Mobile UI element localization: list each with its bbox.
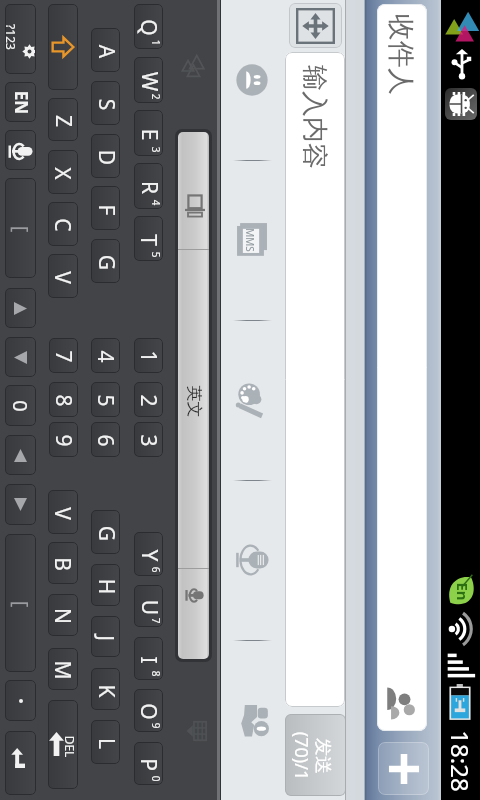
button[interactable]: K <box>91 668 120 710</box>
staticText: B <box>48 557 77 571</box>
staticText: L <box>91 737 120 749</box>
button[interactable]: Language EN <box>5 82 36 122</box>
staticText: 0 <box>150 775 162 781</box>
button[interactable]: Candidates <box>178 132 209 659</box>
staticText: 收件人 <box>384 14 418 95</box>
staticText: 7 <box>150 617 162 623</box>
staticText: K <box>91 684 120 697</box>
button[interactable]: N <box>48 594 78 636</box>
button[interactable]: G <box>91 239 120 283</box>
staticText: 3 <box>150 146 162 152</box>
button[interactable]: Expand editor <box>289 3 342 48</box>
button[interactable]: Space <box>5 178 36 278</box>
button[interactable]: Add recipient <box>378 742 429 795</box>
button[interactable]: G <box>91 510 120 554</box>
staticText: V <box>48 507 77 520</box>
button[interactable]: Recipient <box>377 4 427 731</box>
button[interactable]: L <box>91 720 120 764</box>
button[interactable]: Y <box>134 532 163 576</box>
button[interactable]: Left <box>5 337 36 377</box>
staticText: J <box>91 635 120 641</box>
button[interactable]: R <box>134 163 163 209</box>
button[interactable]: Symbols <box>5 4 36 74</box>
button[interactable]: Record audio <box>234 545 270 575</box>
staticText: 4 <box>91 350 120 363</box>
button[interactable]: M <box>48 648 78 690</box>
staticText: G <box>91 525 120 541</box>
staticText: W <box>134 71 163 91</box>
button[interactable]: Attach <box>234 702 270 738</box>
button[interactable]: V <box>48 490 78 534</box>
staticText: 1 <box>134 350 163 363</box>
button[interactable]: Right <box>5 288 36 328</box>
button[interactable]: C <box>48 202 78 246</box>
staticText: 9 <box>150 722 162 728</box>
staticText: 发送 (70)/1 <box>288 731 333 780</box>
button[interactable]: E <box>134 110 163 156</box>
button[interactable]: H <box>91 564 120 606</box>
button[interactable]: Period <box>5 680 36 721</box>
staticText: E <box>134 128 163 140</box>
staticText: T <box>134 234 163 246</box>
staticText: 5 <box>91 394 120 407</box>
staticText: N <box>48 608 77 624</box>
button[interactable]: Insert emoticon <box>235 63 269 97</box>
button[interactable]: U <box>134 585 163 627</box>
button[interactable]: B <box>48 542 78 584</box>
button[interactable]: Delete <box>48 700 78 789</box>
button[interactable]: Up <box>5 435 36 475</box>
button[interactable]: Message body <box>285 52 345 707</box>
staticText: [ <box>7 600 34 607</box>
button[interactable]: Space bar <box>5 534 36 672</box>
button[interactable]: Hide keyboard <box>182 714 212 748</box>
button[interactable]: 5 <box>91 382 120 417</box>
staticText: 英文 <box>183 385 203 417</box>
button[interactable]: Enter <box>5 731 36 795</box>
button[interactable]: 0 <box>5 385 36 426</box>
button[interactable]: J <box>91 616 120 657</box>
button[interactable]: 9 <box>49 422 78 457</box>
button[interactable]: 7 <box>49 338 78 373</box>
button[interactable]: X <box>48 150 78 194</box>
button[interactable]: 6 <box>91 422 120 457</box>
button[interactable]: Z <box>48 98 78 141</box>
button[interactable]: S <box>91 81 120 125</box>
button[interactable]: Voice input <box>5 130 36 170</box>
button[interactable]: D <box>91 134 120 178</box>
button[interactable]: I <box>134 637 163 680</box>
button[interactable]: A <box>91 28 120 72</box>
button[interactable]: O <box>134 689 163 732</box>
button[interactable]: F <box>91 186 120 230</box>
staticText: X <box>48 167 77 180</box>
staticText: 5 <box>150 251 162 257</box>
staticText: 4 <box>150 199 162 205</box>
staticText: EN <box>9 90 32 114</box>
staticText: P <box>134 758 163 771</box>
button[interactable]: Slideshow <box>234 222 268 258</box>
staticText: C <box>48 218 77 232</box>
button[interactable]: Shift <box>48 4 78 90</box>
button[interactable]: P <box>134 742 163 785</box>
button[interactable]: 发送 (70)/1 <box>285 714 346 796</box>
button[interactable]: 3 <box>134 422 163 457</box>
staticText: 0 <box>7 400 34 412</box>
button[interactable]: Down <box>5 484 36 525</box>
button[interactable]: V <box>48 254 78 298</box>
button[interactable]: 2 <box>134 382 163 417</box>
staticText: G <box>91 254 120 270</box>
staticText: DEL <box>64 735 77 757</box>
staticText: H <box>91 578 120 594</box>
button[interactable]: 4 <box>91 338 120 373</box>
staticText: O <box>134 703 163 720</box>
button[interactable]: T <box>134 216 163 261</box>
button[interactable]: Q <box>134 4 163 49</box>
staticText: M <box>48 660 77 680</box>
staticText: ?123 <box>5 24 19 50</box>
button[interactable]: 8 <box>49 382 78 417</box>
button[interactable]: W <box>134 57 163 103</box>
staticText: 输入内容 <box>298 65 331 169</box>
button[interactable]: Theme <box>234 382 270 418</box>
button[interactable]: 1 <box>134 338 163 373</box>
staticText: V <box>48 271 77 284</box>
staticText: 6 <box>150 566 162 572</box>
